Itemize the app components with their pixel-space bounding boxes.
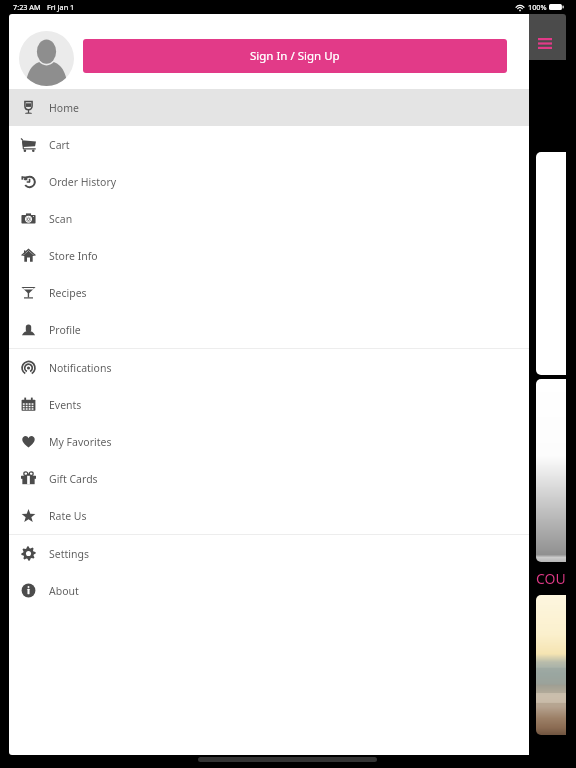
button[interactable]: Sign In / Sign Up xyxy=(83,39,507,73)
button[interactable]: Store Info xyxy=(9,237,529,274)
button[interactable]: Rate Us xyxy=(9,497,529,534)
button[interactable]: Gift Cards xyxy=(9,460,529,497)
button[interactable]: Scan xyxy=(9,200,529,237)
staticText: Cart xyxy=(49,138,70,152)
staticText: Profile xyxy=(49,323,81,337)
staticText: My Favorites xyxy=(49,435,112,449)
button[interactable]: Profile avatar xyxy=(19,31,74,86)
staticText: Store Info xyxy=(49,249,98,263)
button[interactable] xyxy=(536,152,566,375)
button[interactable] xyxy=(536,595,566,735)
button[interactable]: About xyxy=(9,572,529,609)
staticText: Home xyxy=(49,101,79,115)
button[interactable]: Settings xyxy=(9,535,529,572)
staticText: Scan xyxy=(49,212,73,226)
staticText: Notifications xyxy=(49,361,112,375)
staticText: Recipes xyxy=(49,286,87,300)
staticText: About xyxy=(49,584,79,598)
staticText: 7:23 AM xyxy=(13,2,41,12)
staticText: Events xyxy=(49,398,82,412)
button[interactable]: Events xyxy=(9,386,529,423)
button[interactable]: Order History xyxy=(9,163,529,200)
button[interactable]: Cart xyxy=(9,126,529,163)
staticText: Fri Jan 1 xyxy=(47,2,75,12)
button[interactable]: Recipes xyxy=(9,274,529,311)
staticText: Gift Cards xyxy=(49,472,98,486)
staticText: Rate Us xyxy=(49,509,87,523)
staticText: Sign In / Sign Up xyxy=(250,48,340,64)
staticText: 100% xyxy=(528,2,547,12)
staticText: Settings xyxy=(49,547,89,561)
button[interactable]: Home xyxy=(9,89,529,126)
button[interactable]: Profile xyxy=(9,311,529,348)
button[interactable] xyxy=(536,379,566,562)
button[interactable]: My Favorites xyxy=(9,423,529,460)
button[interactable]: Notifications xyxy=(9,349,529,386)
button[interactable]: Open navigation menu xyxy=(531,29,559,57)
staticText: COUPONS xyxy=(536,569,566,588)
staticText: Order History xyxy=(49,175,117,189)
